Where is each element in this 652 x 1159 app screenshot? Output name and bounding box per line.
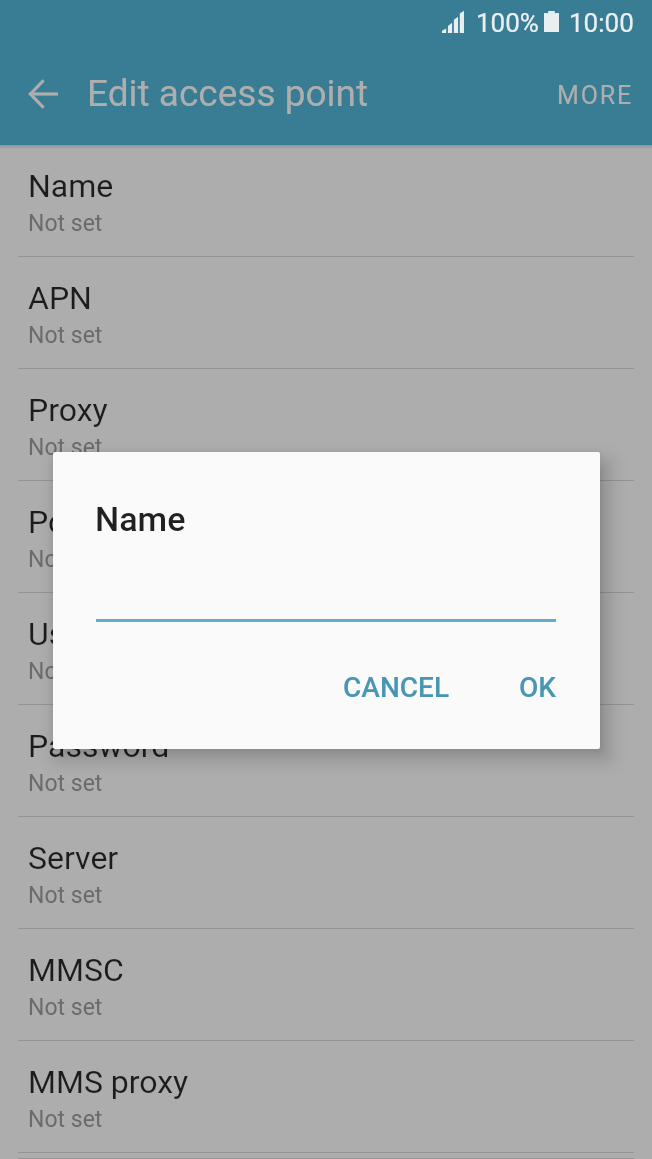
staticText: Not set	[28, 546, 103, 573]
staticText: MMS proxy	[28, 1063, 189, 1101]
staticText: Edit access point	[87, 72, 369, 115]
staticText: Not set	[28, 322, 103, 349]
button[interactable]: Name	[0, 145, 652, 257]
staticText: Name	[95, 499, 186, 539]
staticText: Port	[28, 503, 89, 541]
staticText: Not set	[28, 658, 103, 685]
staticText: APN	[28, 279, 92, 317]
button[interactable]: Username	[0, 593, 652, 705]
button[interactable]: Server	[0, 817, 652, 929]
staticText: 10:00	[569, 8, 634, 38]
button[interactable]: Name input field	[96, 570, 556, 622]
button[interactable]: MORE	[543, 69, 648, 122]
staticText: Not set	[28, 770, 103, 797]
staticText: OK	[519, 671, 556, 704]
staticText: Not set	[28, 434, 103, 461]
staticText: Password	[28, 727, 170, 765]
staticText: Name	[28, 167, 114, 205]
button[interactable]: Navigate up	[22, 72, 66, 116]
staticText: 100%	[476, 8, 539, 38]
staticText: Server	[28, 839, 119, 877]
staticText: MMSC	[28, 951, 124, 989]
staticText: Username	[28, 615, 174, 653]
button[interactable]: CANCEL	[327, 657, 466, 718]
button[interactable]: APN	[0, 257, 652, 369]
button[interactable]: MMS proxy	[0, 1041, 652, 1153]
button[interactable]: MMS port	[0, 1153, 652, 1159]
button[interactable]: OK	[503, 657, 572, 718]
staticText: Proxy	[28, 391, 108, 429]
staticText: Not set	[28, 1106, 103, 1133]
button[interactable]: Proxy	[0, 369, 652, 481]
staticText: CANCEL	[343, 671, 450, 704]
staticText: Not set	[28, 994, 103, 1021]
staticText: MORE	[557, 81, 634, 110]
staticText: Not set	[28, 882, 103, 909]
button[interactable]: Password	[0, 705, 652, 817]
button[interactable]: MMSC	[0, 929, 652, 1041]
button[interactable]: Port	[0, 481, 652, 593]
staticText: Not set	[28, 210, 103, 237]
